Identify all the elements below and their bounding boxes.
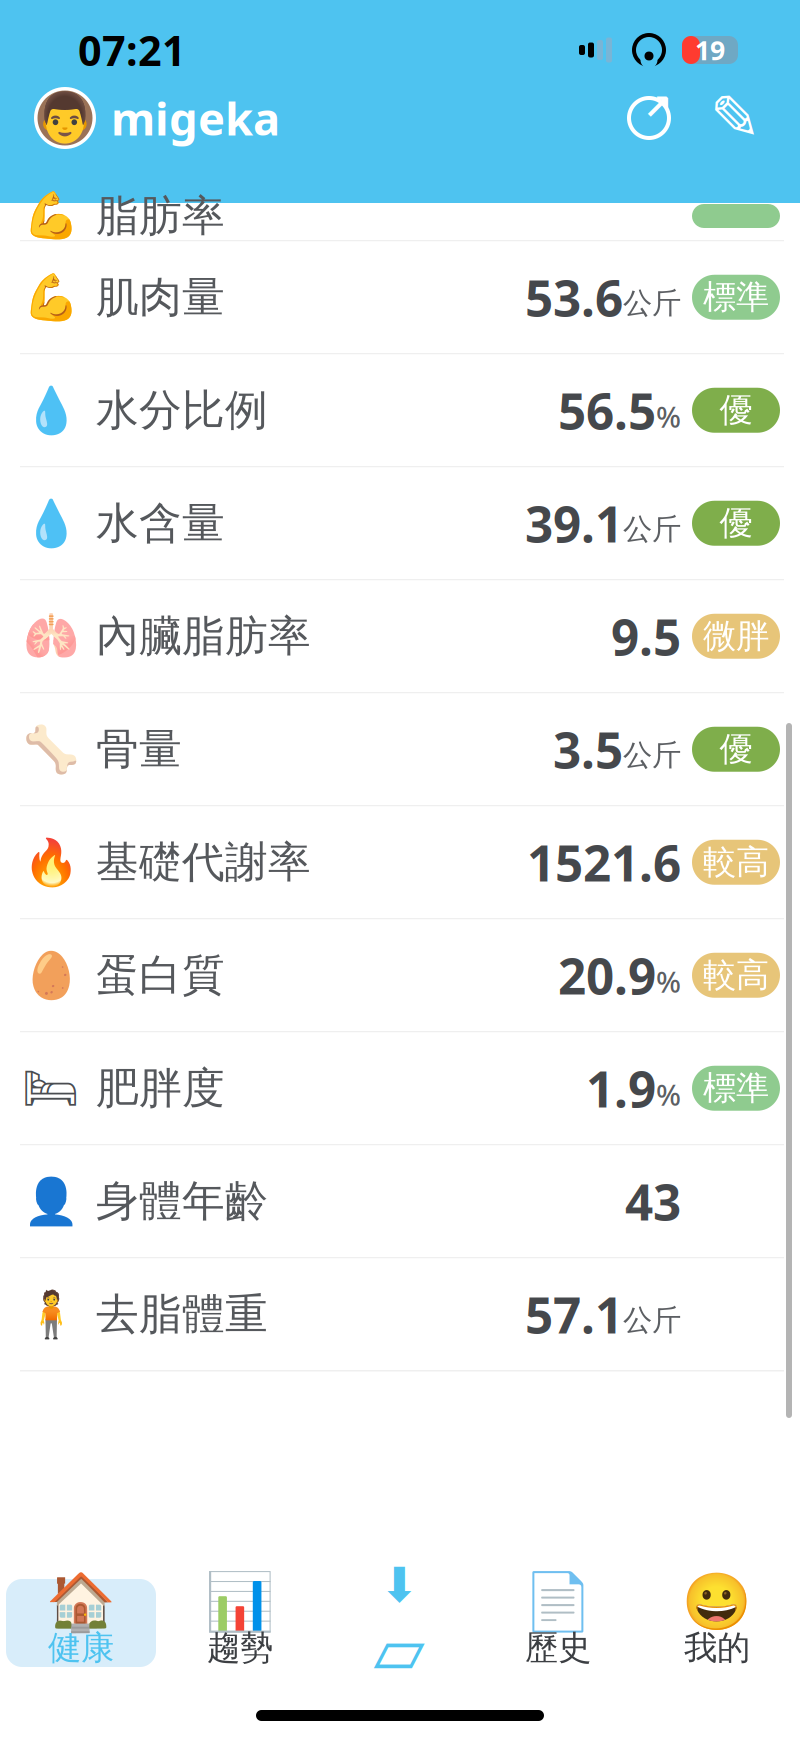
staticText: 🥚 bbox=[23, 949, 79, 1001]
staticText: 📄 bbox=[523, 1569, 593, 1633]
button[interactable]: 🏠 bbox=[6, 1579, 156, 1667]
button[interactable]: 量測 bbox=[324, 1579, 474, 1667]
button[interactable]: 🔥 bbox=[0, 806, 800, 919]
staticText: 優 bbox=[719, 729, 752, 770]
staticText: 去脂體重 bbox=[96, 1288, 268, 1340]
button[interactable]: 💪 bbox=[0, 241, 800, 354]
staticText: 水分比例 bbox=[96, 384, 268, 436]
staticText: 👤 bbox=[23, 1175, 79, 1227]
staticText: 公斤 bbox=[623, 1302, 681, 1338]
staticText: 🫁 bbox=[23, 610, 79, 662]
staticText: 脂肪率 bbox=[96, 190, 225, 242]
staticText: 健康 bbox=[48, 1627, 114, 1668]
staticText: 🛏 bbox=[22, 1062, 80, 1114]
staticText: 🔥 bbox=[23, 836, 79, 888]
staticText: 水含量 bbox=[96, 497, 225, 549]
button[interactable]: 同步 bbox=[620, 89, 678, 147]
button[interactable]: 🛏 bbox=[0, 1032, 800, 1145]
staticText: 1521.6 bbox=[527, 829, 681, 895]
staticText: 蛋白質 bbox=[96, 949, 225, 1001]
staticText: 標準 bbox=[703, 277, 769, 318]
staticText: 較高 bbox=[703, 955, 769, 996]
staticText: 公斤 bbox=[623, 285, 681, 321]
staticText: 基礎代謝率 bbox=[96, 836, 311, 888]
staticText: 🦴 bbox=[23, 723, 79, 775]
staticText: 57.1 bbox=[525, 1281, 623, 1347]
staticText: 3.5 bbox=[553, 716, 623, 782]
staticText: ⬇ bbox=[379, 1558, 419, 1612]
staticText: 💧 bbox=[23, 384, 79, 436]
staticText: migeka bbox=[111, 88, 280, 148]
staticText: 內臟脂肪率 bbox=[96, 610, 311, 662]
staticText: 💪 bbox=[23, 190, 79, 242]
staticText: 📊 bbox=[205, 1569, 275, 1633]
staticText: 公斤 bbox=[623, 737, 681, 773]
staticText: 歷史 bbox=[525, 1627, 591, 1668]
button[interactable]: 🫁 bbox=[0, 580, 800, 693]
staticText: 公斤 bbox=[623, 511, 681, 547]
staticText: 身體年齡 bbox=[96, 1175, 268, 1227]
button[interactable]: 📄 bbox=[483, 1579, 633, 1667]
button[interactable]: 🧍 bbox=[0, 1258, 800, 1371]
staticText: % bbox=[656, 1075, 681, 1114]
button[interactable]: 👤 bbox=[0, 1145, 800, 1258]
staticText: 43 bbox=[625, 1168, 681, 1234]
button[interactable]: 💧 bbox=[0, 354, 800, 467]
staticText: 56.5 bbox=[558, 377, 656, 443]
staticText: 9.5 bbox=[611, 603, 681, 669]
staticText: 標準 bbox=[703, 1068, 769, 1109]
button[interactable]: 📊 bbox=[165, 1579, 315, 1667]
staticText: 😀 bbox=[682, 1569, 752, 1633]
staticText: 💪 bbox=[23, 271, 79, 323]
staticText: 53.6 bbox=[525, 264, 623, 330]
button[interactable]: 😀 bbox=[642, 1579, 792, 1667]
button[interactable]: 🥚 bbox=[0, 919, 800, 1032]
staticText: 🏠 bbox=[46, 1569, 116, 1633]
staticText: 07:21 bbox=[78, 23, 186, 77]
staticText: 19 bbox=[695, 32, 725, 68]
staticText: 我的 bbox=[684, 1627, 750, 1668]
staticText: ▱ bbox=[373, 1612, 424, 1688]
staticText: 肥胖度 bbox=[96, 1062, 225, 1114]
button[interactable]: 編輯 bbox=[706, 89, 764, 147]
staticText: 骨量 bbox=[96, 723, 182, 775]
staticText: ✎ bbox=[709, 83, 760, 153]
staticText: 1.9 bbox=[586, 1055, 656, 1121]
staticText: 優 bbox=[719, 503, 752, 544]
button[interactable]: 🦴 bbox=[0, 693, 800, 806]
staticText: 39.1 bbox=[525, 490, 623, 556]
staticText: 趨勢 bbox=[207, 1627, 273, 1668]
staticText: 🧍 bbox=[23, 1288, 79, 1340]
button[interactable]: 👨 bbox=[34, 87, 280, 149]
staticText: 👨 bbox=[35, 91, 95, 145]
staticText: 較高 bbox=[703, 842, 769, 883]
staticText: % bbox=[656, 962, 681, 1001]
button[interactable]: 💧 bbox=[0, 467, 800, 580]
staticText: % bbox=[656, 397, 681, 436]
staticText: 💧 bbox=[23, 497, 79, 549]
staticText: 20.9 bbox=[558, 942, 656, 1008]
staticText: 微胖 bbox=[703, 616, 769, 657]
staticText: 優 bbox=[719, 390, 752, 431]
staticText: 肌肉量 bbox=[96, 271, 225, 323]
staticText: ↗ bbox=[643, 87, 672, 127]
